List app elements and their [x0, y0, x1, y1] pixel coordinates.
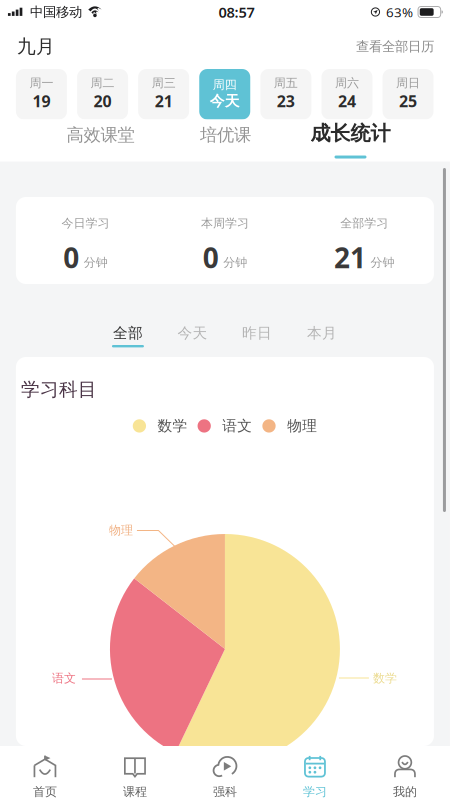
staticText: 分钟 [84, 255, 108, 270]
staticText: 周四 [213, 77, 237, 92]
button[interactable]: 周六 [321, 69, 372, 119]
staticText: 21 [334, 239, 366, 276]
button[interactable]: 强科 [180, 746, 270, 800]
staticText: 19 [32, 90, 50, 112]
staticText: 全部学习 [340, 216, 388, 231]
staticText: 0 [63, 239, 79, 276]
button[interactable]: 学习 [270, 746, 360, 800]
button[interactable]: 我的 [360, 746, 450, 800]
button[interactable]: 课程 [90, 746, 180, 800]
staticText: 强科 [213, 784, 237, 799]
staticText: 0 [203, 239, 219, 276]
staticText: 周一 [29, 76, 53, 90]
staticText: 学习 [303, 784, 327, 799]
staticText: 查看全部日历 [356, 38, 434, 55]
staticText: 周三 [152, 76, 176, 90]
staticText: 我的 [393, 784, 417, 799]
staticText: 学习科目 [21, 378, 97, 401]
staticText: 课程 [123, 784, 147, 799]
staticText: 周五 [274, 76, 298, 90]
staticText: 25 [399, 90, 417, 112]
staticText: 九月 [17, 35, 55, 58]
staticText: 语文 [222, 417, 252, 435]
staticText: 全部 [113, 324, 143, 342]
staticText: 周六 [335, 76, 359, 90]
button[interactable]: 今天 [160, 284, 224, 357]
staticText: 语文 [52, 671, 76, 686]
button[interactable]: 查看全部日历 [356, 38, 434, 55]
staticText: 数学 [158, 417, 188, 435]
staticText: 今天 [177, 324, 207, 342]
staticText: 首页 [33, 784, 57, 799]
button[interactable]: 高效课堂 [39, 119, 162, 161]
staticText: 本月 [307, 324, 337, 342]
staticText: 分钟 [370, 255, 394, 270]
button[interactable]: 昨日 [224, 284, 289, 357]
staticText: 昨日 [242, 324, 272, 342]
staticText: 成长统计 [310, 121, 390, 145]
button[interactable]: 周四 [199, 69, 250, 119]
staticText: 20 [93, 90, 111, 112]
button[interactable]: 首页 [0, 746, 90, 800]
staticText: 23 [277, 90, 295, 112]
staticText: 63% [386, 3, 413, 21]
staticText: 高效课堂 [66, 124, 134, 145]
staticText: 培优课 [200, 124, 251, 145]
button[interactable]: 周日 [383, 69, 434, 119]
staticText: 本周学习 [201, 216, 249, 231]
staticText: 今日学习 [62, 216, 110, 231]
staticText: 数学 [373, 671, 397, 686]
staticText: 21 [155, 90, 173, 112]
button[interactable]: 培优课 [162, 119, 289, 161]
staticText: 24 [338, 90, 356, 112]
staticText: 分钟 [223, 255, 247, 270]
button[interactable]: 周一 [16, 69, 67, 119]
staticText: 周日 [396, 76, 420, 90]
staticText: 中国移动 [30, 4, 82, 20]
button[interactable]: 本月 [289, 284, 354, 357]
button[interactable]: 全部 [95, 284, 160, 357]
button[interactable]: 周二 [77, 69, 128, 119]
button[interactable]: 周三 [138, 69, 189, 119]
staticText: 物理 [109, 523, 133, 538]
staticText: 今天 [210, 92, 240, 110]
staticText: 物理 [287, 417, 317, 435]
button[interactable]: 周五 [260, 69, 311, 119]
staticText: 周二 [90, 76, 114, 90]
staticText: 08:57 [218, 2, 254, 22]
button[interactable]: 成长统计 [289, 119, 412, 161]
